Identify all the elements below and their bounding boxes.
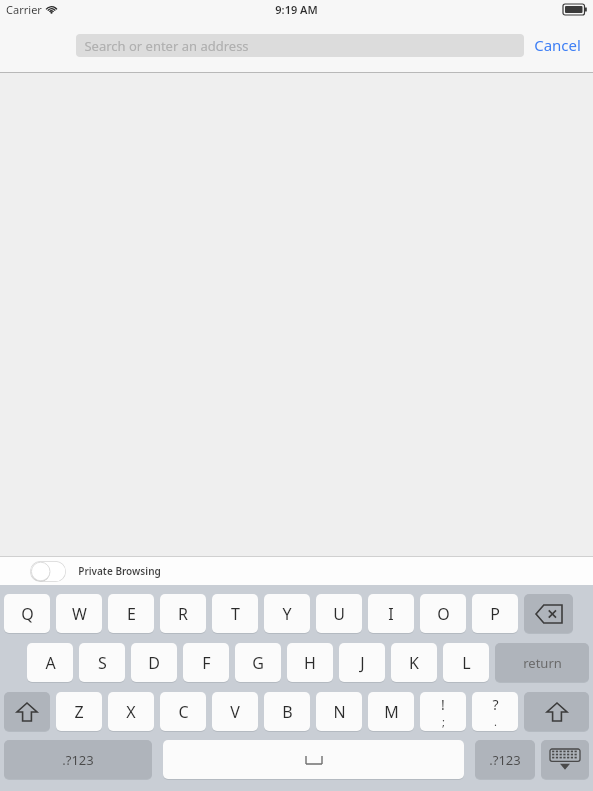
staticText: N bbox=[333, 701, 346, 723]
button[interactable]: Y bbox=[264, 594, 310, 634]
button[interactable]: G bbox=[235, 643, 281, 683]
button[interactable]: R bbox=[160, 594, 206, 634]
staticText: W bbox=[72, 603, 87, 625]
staticText: P bbox=[490, 603, 500, 625]
button[interactable]: P bbox=[472, 594, 518, 634]
staticText: ; bbox=[442, 714, 445, 729]
staticText: ? bbox=[492, 695, 499, 714]
staticText: Private Browsing bbox=[78, 564, 161, 578]
staticText: 9:19 AM bbox=[275, 2, 318, 17]
staticText: I bbox=[388, 603, 394, 625]
staticText: Z bbox=[74, 701, 84, 723]
staticText: ! bbox=[441, 695, 445, 714]
button[interactable]: J bbox=[339, 643, 385, 683]
staticText: O bbox=[437, 603, 450, 625]
staticText: V bbox=[230, 701, 240, 723]
button[interactable]: Backspace bbox=[524, 594, 573, 634]
staticText: X bbox=[126, 701, 136, 723]
button[interactable]: .?123 bbox=[4, 740, 152, 780]
button[interactable]: Private Browsing toggle bbox=[30, 561, 66, 582]
button[interactable]: Shift bbox=[524, 692, 589, 732]
staticText: . bbox=[494, 714, 497, 729]
button[interactable]: E bbox=[108, 594, 154, 634]
button[interactable]: F bbox=[183, 643, 229, 683]
staticText: Q bbox=[21, 603, 34, 625]
button[interactable]: T bbox=[212, 594, 258, 634]
button[interactable]: Q bbox=[4, 594, 50, 634]
button[interactable]: D bbox=[131, 643, 177, 683]
staticText: Carrier bbox=[6, 2, 42, 17]
button[interactable]: V bbox=[212, 692, 258, 732]
staticText: K bbox=[409, 652, 419, 674]
staticText: B bbox=[282, 701, 293, 723]
staticText: U bbox=[333, 603, 345, 625]
button[interactable]: Hide keyboard bbox=[541, 740, 589, 780]
staticText: G bbox=[252, 652, 264, 674]
staticText: .?123 bbox=[62, 751, 94, 769]
staticText: .?123 bbox=[489, 751, 521, 769]
button[interactable]: I bbox=[368, 594, 414, 634]
staticText: T bbox=[231, 603, 240, 625]
staticText: L bbox=[462, 652, 471, 674]
staticText: Cancel bbox=[534, 35, 581, 55]
staticText: C bbox=[178, 701, 189, 723]
button[interactable]: .?123 bbox=[475, 740, 535, 780]
button[interactable]: C bbox=[160, 692, 206, 732]
button[interactable]: B bbox=[264, 692, 310, 732]
button[interactable]: S bbox=[79, 643, 125, 683]
button[interactable]: A bbox=[27, 643, 73, 683]
button[interactable]: ! bbox=[420, 692, 466, 732]
staticText: J bbox=[360, 652, 365, 674]
staticText: Search or enter an address bbox=[84, 37, 249, 55]
staticText: A bbox=[45, 652, 56, 674]
staticText: H bbox=[304, 652, 316, 674]
button[interactable]: Space bbox=[163, 740, 464, 780]
button[interactable]: return bbox=[495, 643, 589, 683]
button[interactable]: M bbox=[368, 692, 414, 732]
button[interactable]: Cancel bbox=[534, 35, 581, 55]
button[interactable]: Z bbox=[56, 692, 102, 732]
button[interactable]: X bbox=[108, 692, 154, 732]
button[interactable]: O bbox=[420, 594, 466, 634]
staticText: S bbox=[98, 652, 107, 674]
button[interactable]: H bbox=[287, 643, 333, 683]
button[interactable]: U bbox=[316, 594, 362, 634]
button[interactable]: Shift bbox=[4, 692, 50, 732]
staticText: F bbox=[202, 652, 211, 674]
button[interactable]: ? bbox=[472, 692, 518, 732]
button[interactable]: K bbox=[391, 643, 437, 683]
button[interactable]: N bbox=[316, 692, 362, 732]
button[interactable]: W bbox=[56, 594, 102, 634]
staticText: D bbox=[148, 652, 160, 674]
button[interactable]: Search or enter an address bbox=[76, 34, 524, 57]
staticText: Y bbox=[282, 603, 292, 625]
staticText: R bbox=[178, 603, 188, 625]
button[interactable]: L bbox=[443, 643, 489, 683]
staticText: M bbox=[384, 701, 399, 723]
staticText: E bbox=[127, 603, 136, 625]
staticText: return bbox=[523, 654, 562, 672]
